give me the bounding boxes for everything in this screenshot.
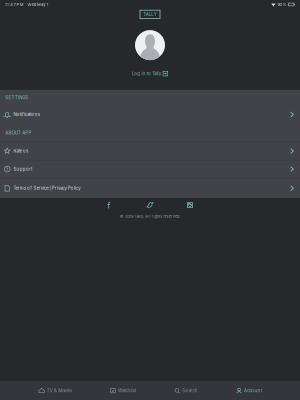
staticText: Wed May 1: [28, 2, 48, 7]
staticText: ABOUT APP: [5, 130, 31, 135]
staticText: Support: [13, 166, 32, 172]
button[interactable]: Instagram: [185, 201, 195, 209]
button[interactable]: Notifications: [0, 106, 300, 123]
staticText: Search: [182, 388, 197, 393]
staticText: TV & Movies: [47, 388, 71, 393]
staticText: 90%: [277, 2, 286, 7]
button[interactable]: Twitter: [145, 201, 155, 209]
staticText: TALLY: [143, 12, 157, 17]
staticText: Log in to Tally: [132, 71, 160, 76]
button[interactable]: Rate us: [0, 142, 300, 160]
staticText: Watchlist: [118, 388, 135, 393]
button[interactable]: Facebook: [105, 201, 115, 209]
button[interactable]: Support: [0, 160, 300, 178]
staticText: Terms of Service | Privacy Policy: [13, 186, 80, 191]
button[interactable]: Log in to Tally: [132, 71, 168, 77]
button[interactable]: Watchlist: [110, 381, 136, 400]
staticText: 11:47 PM: [5, 2, 24, 7]
button[interactable]: Search: [174, 381, 197, 400]
button[interactable]: TV & Movies: [39, 381, 71, 400]
button[interactable]: Account: [236, 381, 261, 400]
staticText: SETTINGS: [5, 95, 28, 100]
staticText: © 2019 Tally. All rights reserved.: [120, 214, 180, 219]
button[interactable]: Terms of Service | Privacy Policy: [0, 178, 300, 198]
staticText: Rate us: [13, 148, 28, 154]
staticText: Account: [244, 388, 261, 393]
staticText: Notifications: [13, 112, 40, 117]
